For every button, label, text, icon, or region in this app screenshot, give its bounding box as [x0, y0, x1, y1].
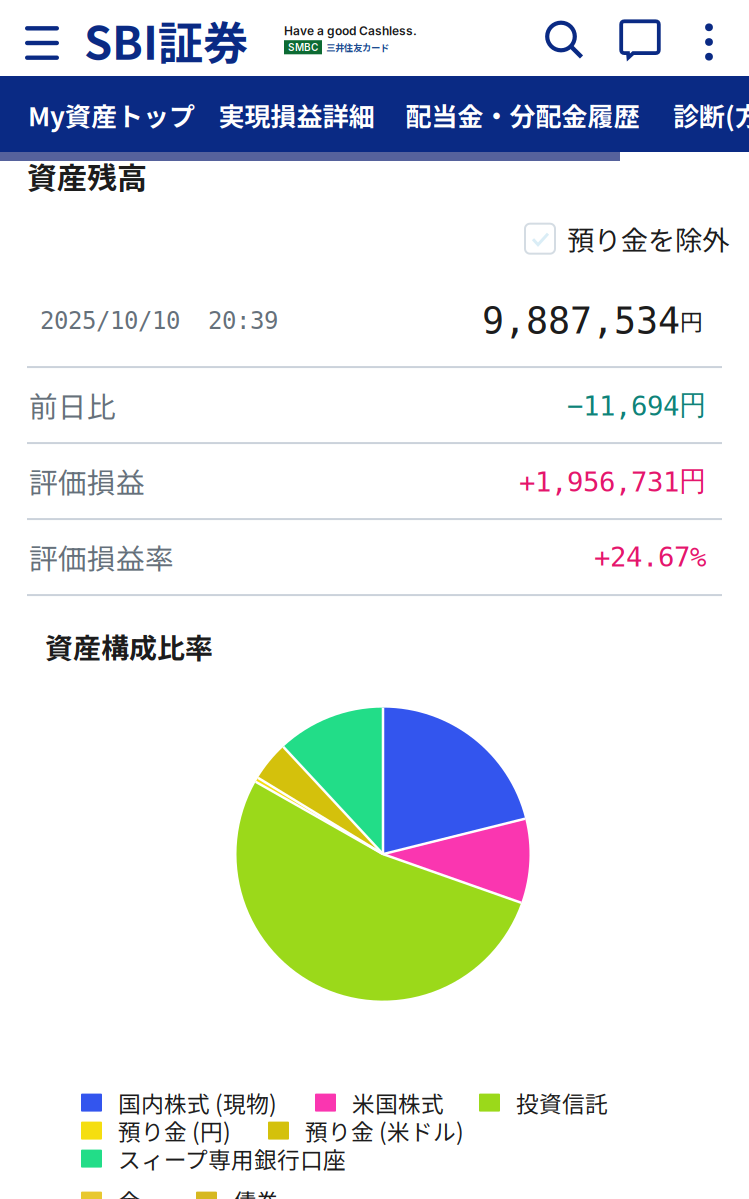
staticText: 9,887,534: [482, 299, 680, 342]
staticText: +1,956,731円: [519, 464, 706, 498]
staticText: 資産残高: [27, 154, 147, 198]
staticText: 債券: [233, 1184, 279, 1199]
staticText: SMBC: [288, 41, 318, 53]
staticText: 評価損益率: [29, 536, 174, 578]
staticText: My資産トップ: [28, 96, 195, 134]
button[interactable]: Search: [543, 18, 587, 62]
button[interactable]: My資産トップ: [28, 77, 186, 153]
button[interactable]: 預り金を除外: [525, 219, 729, 258]
staticText: 預り金を除外: [567, 219, 729, 258]
staticText: 実現損益詳細: [218, 96, 374, 134]
staticText: スィープ専用銀行口座: [118, 1142, 346, 1175]
staticText: 診断(方: [673, 96, 749, 134]
staticText: 三井住友カード: [326, 40, 389, 54]
button[interactable]: More options: [699, 20, 719, 64]
staticText: Have a good Cashless.: [284, 24, 417, 38]
staticText: 金: [118, 1184, 141, 1199]
button[interactable]: Menu: [19, 19, 65, 67]
staticText: 資産構成比率: [45, 626, 213, 667]
staticText: 評価損益: [29, 460, 145, 502]
staticText: 国内株式 (現物): [118, 1086, 277, 1119]
staticText: 投資信託: [516, 1086, 608, 1119]
staticText: 配当金・分配金履歴: [405, 96, 639, 134]
staticText: 前日比: [29, 384, 116, 426]
staticText: 米国株式: [352, 1086, 444, 1119]
staticText: −11,694円: [567, 388, 706, 422]
button[interactable]: 診断(方: [673, 77, 749, 153]
button[interactable]: Messages: [618, 18, 662, 64]
staticText: 円: [680, 304, 703, 337]
staticText: 預り金 (円): [118, 1114, 231, 1147]
staticText: +24.67%: [594, 541, 706, 573]
button[interactable]: 実現損益詳細: [218, 77, 373, 153]
staticText: 預り金 (米ドル): [305, 1114, 464, 1147]
staticText: 2025/10/10 20:39: [40, 307, 278, 335]
staticText: SBI証券: [84, 7, 248, 73]
button[interactable]: 配当金・分配金履歴: [405, 77, 638, 153]
